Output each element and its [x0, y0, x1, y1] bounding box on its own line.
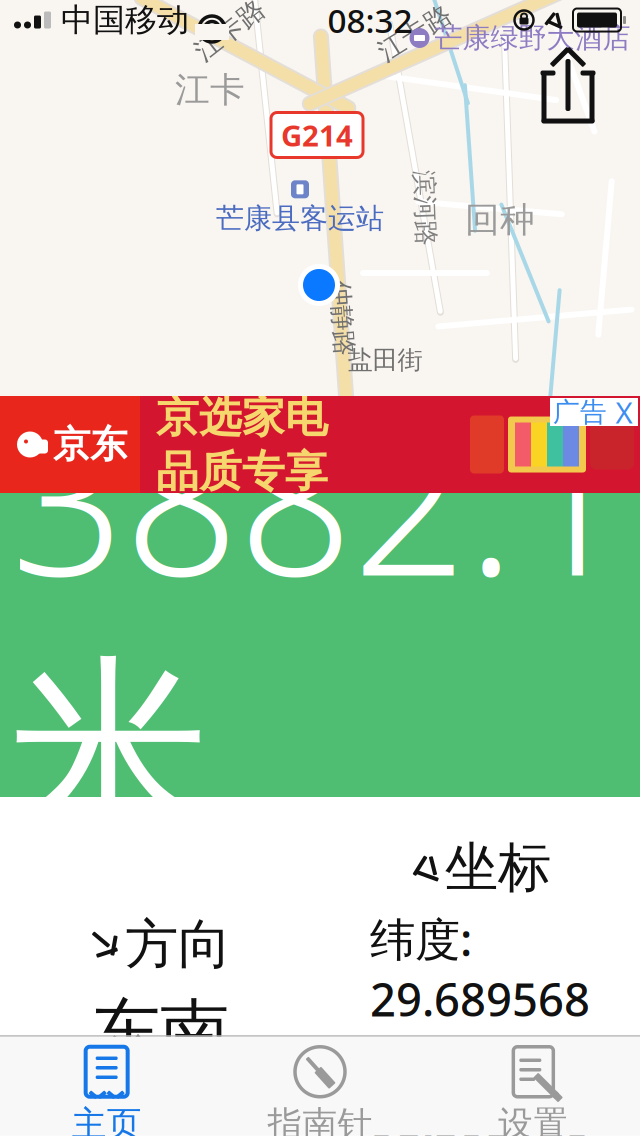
staticText: 广告 [553, 396, 607, 428]
staticText: 经度:98.595120 [370, 1031, 590, 1136]
button[interactable]: 分享 [536, 50, 600, 124]
staticText: 08:32 [327, 0, 412, 42]
staticText: X [615, 392, 632, 431]
staticText: 东南 [91, 989, 229, 1074]
button[interactable]: 指南针 [213, 1045, 427, 1136]
staticText: 主页 [72, 1103, 142, 1136]
staticText: 坐标 [445, 835, 551, 900]
staticText: 京东 [53, 422, 127, 467]
staticText: 昌都市,中国 [124, 884, 516, 983]
staticText: 品质专享 [156, 445, 328, 498]
staticText: 仲静路 [304, 302, 379, 333]
staticText: 气压:100kPa [386, 305, 636, 363]
button[interactable]: 广告 [550, 398, 610, 426]
staticText: 中国移动 [61, 0, 189, 40]
staticText: 京选家电 [156, 391, 328, 443]
staticText: 3882.1米 [10, 365, 629, 876]
staticText: 方向 [125, 912, 231, 977]
staticText: 纬度:29.689568 [370, 908, 590, 1029]
staticText: 江卡路 [374, 17, 455, 49]
staticText: 指南针 [267, 1103, 372, 1136]
staticText: 江卡路 [189, 14, 270, 46]
button[interactable]: 关闭广告 [610, 398, 638, 426]
staticText: 江卡 [175, 69, 245, 111]
staticText: 盐田街 [347, 344, 422, 375]
staticText: 芒康绿野大酒店 [434, 21, 630, 55]
staticText: 芒康县客运站 [216, 201, 384, 236]
staticText: 设置 [498, 1103, 568, 1136]
staticText: 回种 [465, 199, 535, 241]
staticText: G214 [281, 115, 353, 154]
staticText: 滨河路 [387, 192, 462, 223]
button[interactable]: 设置 [427, 1045, 640, 1136]
button[interactable]: 主页 [0, 1045, 213, 1136]
